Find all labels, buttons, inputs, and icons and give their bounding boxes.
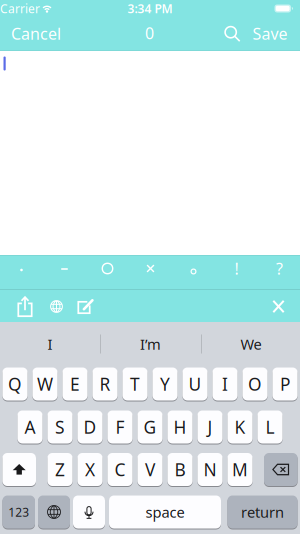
button[interactable]: Cancel — [4, 18, 68, 48]
button[interactable]: Shift — [2, 452, 36, 486]
staticText: E — [70, 372, 80, 395]
staticText: F — [115, 415, 124, 438]
staticText: L — [265, 415, 274, 438]
button[interactable]: Q — [2, 367, 28, 401]
staticText: V — [145, 458, 155, 481]
button[interactable]: A — [17, 410, 43, 444]
button[interactable]: K — [227, 410, 253, 444]
button[interactable]: Dictate — [73, 495, 105, 529]
button[interactable]: ! — [221, 255, 251, 281]
button[interactable]: Z — [47, 452, 73, 486]
button[interactable]: Dismiss keyboard — [263, 292, 293, 320]
staticText: I’m — [140, 334, 161, 354]
button[interactable]: Next keyboard — [38, 495, 70, 529]
staticText: We — [240, 334, 261, 354]
staticText: X — [85, 458, 95, 481]
staticText: 3:34 PM — [127, 0, 172, 16]
button[interactable]: Delete — [264, 452, 298, 486]
button[interactable]: L — [257, 410, 283, 444]
button[interactable]: M — [227, 452, 253, 486]
staticText: O — [248, 372, 262, 395]
staticText: I — [47, 334, 52, 354]
button[interactable]: W — [32, 367, 58, 401]
staticText: N — [203, 458, 216, 481]
button[interactable]: ? — [264, 255, 294, 281]
button[interactable]: F — [107, 410, 133, 444]
button[interactable]: 。 — [178, 258, 208, 284]
staticText: S — [55, 415, 65, 438]
staticText: I — [222, 372, 228, 395]
staticText: U — [188, 372, 201, 395]
button[interactable]: I — [2, 329, 98, 359]
button[interactable]: B — [167, 452, 193, 486]
button[interactable]: Search — [218, 19, 246, 47]
staticText: ! — [234, 258, 238, 279]
staticText: 123 — [8, 504, 29, 520]
staticText: W — [37, 372, 53, 395]
staticText: H — [173, 415, 186, 438]
staticText: C — [114, 458, 125, 481]
button[interactable]: O — [242, 367, 268, 401]
staticText: space — [145, 502, 184, 522]
button[interactable]: C — [107, 452, 133, 486]
staticText: Save — [252, 23, 287, 44]
button[interactable]: × — [135, 255, 165, 281]
staticText: Carrier — [0, 0, 40, 16]
button[interactable]: P — [272, 367, 298, 401]
button[interactable]: U — [182, 367, 208, 401]
staticText: D — [83, 415, 96, 438]
staticText: T — [130, 372, 140, 395]
staticText: A — [24, 415, 35, 438]
button[interactable]: G — [137, 410, 163, 444]
staticText: ? — [276, 258, 283, 279]
button[interactable]: E — [62, 367, 88, 401]
button[interactable]: Compose — [71, 292, 101, 320]
button[interactable]: 123 — [2, 495, 35, 529]
button[interactable]: Y — [152, 367, 178, 401]
button[interactable]: Web — [41, 292, 71, 320]
button[interactable]: N — [197, 452, 223, 486]
button[interactable]: R — [92, 367, 118, 401]
staticText: P — [280, 372, 290, 395]
button[interactable]: J — [197, 410, 223, 444]
button[interactable]: I’m — [102, 329, 198, 359]
staticText: Z — [55, 458, 65, 481]
staticText: return — [241, 502, 284, 522]
staticText: R — [99, 372, 110, 395]
button[interactable]: S — [47, 410, 73, 444]
button[interactable]: X — [77, 452, 103, 486]
button[interactable]: space — [109, 495, 221, 529]
button[interactable]: D — [77, 410, 103, 444]
button[interactable]: H — [167, 410, 193, 444]
staticText: Cancel — [11, 23, 61, 44]
button[interactable]: I — [212, 367, 238, 401]
button[interactable]: return — [227, 495, 297, 529]
button[interactable]: V — [137, 452, 163, 486]
staticText: Y — [160, 372, 170, 395]
staticText: B — [174, 458, 185, 481]
button[interactable]: Share — [10, 292, 40, 320]
staticText: 0 — [145, 22, 154, 44]
staticText: K — [234, 415, 245, 438]
button[interactable]: T — [122, 367, 148, 401]
button[interactable]: Save — [248, 18, 292, 48]
button[interactable]: 〇 — [92, 255, 122, 281]
button[interactable]: We — [203, 329, 299, 359]
staticText: G — [143, 415, 156, 438]
staticText: M — [232, 458, 248, 481]
button[interactable]: ・ — [6, 257, 36, 283]
button[interactable]: ー — [49, 256, 79, 282]
staticText: Q — [8, 372, 22, 395]
staticText: J — [207, 415, 212, 438]
